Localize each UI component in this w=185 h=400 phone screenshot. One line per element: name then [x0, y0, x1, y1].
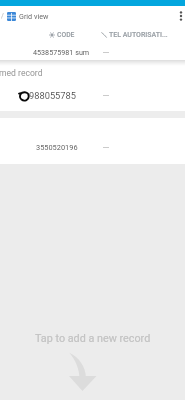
- button[interactable]: 4538575981 sum: [0, 44, 185, 60]
- staticText: /: [1, 12, 4, 20]
- staticText: Grid view: [19, 12, 49, 20]
- staticText: med record: [0, 68, 43, 78]
- staticText: Tap to add a new record: [35, 332, 151, 345]
- button[interactable]: More options: [174, 9, 185, 23]
- staticText: 988055785: [29, 90, 77, 101]
- button[interactable]: 3550520196: [0, 118, 185, 164]
- button[interactable]: 988055785: [0, 82, 185, 111]
- staticText: TEL AUTORISATI...: [109, 31, 168, 39]
- staticText: CODE: [57, 31, 75, 39]
- staticText: 3550520196: [36, 143, 78, 152]
- staticText: 4538575981 sum: [33, 48, 90, 56]
